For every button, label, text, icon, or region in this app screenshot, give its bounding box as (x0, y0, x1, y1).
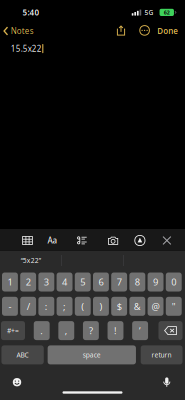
button[interactable]: return (141, 345, 182, 364)
staticText: " (172, 300, 176, 312)
button[interactable]: , (58, 321, 74, 340)
staticText: , (65, 324, 68, 337)
staticText: 5G (144, 8, 153, 17)
button[interactable]: “5x22” (0, 251, 61, 270)
button[interactable]: #+= (1, 321, 25, 340)
staticText: ; (63, 300, 66, 312)
button[interactable]: space (48, 345, 136, 364)
button[interactable]: - (2, 297, 18, 316)
staticText: 62 (164, 9, 170, 16)
staticText: Done (157, 26, 178, 36)
staticText: ? (89, 324, 93, 337)
staticText: Notes (11, 26, 34, 36)
staticText: 15.5x22 (11, 43, 42, 54)
staticText: space (83, 350, 101, 359)
button[interactable]: @ (148, 297, 163, 316)
button[interactable]: 0 (166, 272, 182, 291)
button[interactable]: . (34, 321, 50, 340)
staticText: / (27, 300, 30, 312)
button[interactable]: Markup (130, 230, 150, 251)
button[interactable]: ! (108, 321, 123, 340)
staticText: & (134, 300, 141, 312)
button[interactable]: 9 (148, 272, 163, 291)
staticText: ABC (17, 350, 29, 359)
button[interactable]: 4 (57, 272, 72, 291)
button[interactable]: Emoji (7, 372, 27, 392)
staticText: ( (81, 300, 84, 312)
staticText: - (8, 300, 11, 312)
button[interactable]: 2 (20, 272, 36, 291)
staticText: 9 (153, 276, 158, 288)
button[interactable]: Done (154, 22, 181, 40)
button[interactable]: More options (135, 21, 154, 40)
button[interactable]: Dictation (157, 371, 176, 393)
staticText: “5x22” (21, 256, 41, 265)
button[interactable]: 3 (38, 272, 54, 291)
button[interactable]: ’ (132, 321, 148, 340)
button[interactable]: / (20, 297, 36, 316)
button[interactable]: ) (93, 297, 109, 316)
staticText: $ (117, 300, 122, 312)
button[interactable]: : (38, 297, 54, 316)
button[interactable]: 5 (75, 272, 91, 291)
staticText: Aa (47, 235, 57, 246)
button[interactable]: 6 (93, 272, 109, 291)
button[interactable]: ABC (1, 345, 44, 364)
staticText: 8 (135, 276, 140, 288)
staticText: 4 (62, 276, 67, 288)
button[interactable]: 1 (2, 272, 18, 291)
staticText: 5:40 (22, 7, 39, 18)
staticText: ’ (139, 324, 141, 337)
staticText: 0 (171, 276, 176, 288)
button[interactable]: ( (75, 297, 91, 316)
button[interactable]: Hide keyboard (157, 231, 176, 250)
staticText: 2 (26, 276, 31, 288)
staticText: return (152, 350, 172, 359)
staticText: 6 (98, 276, 103, 288)
staticText: @ (151, 300, 159, 312)
button[interactable]: ; (57, 297, 72, 316)
button[interactable]: " (166, 297, 182, 316)
button[interactable]: $ (111, 297, 127, 316)
button[interactable]: 7 (111, 272, 127, 291)
button[interactable]: 8 (129, 272, 145, 291)
button[interactable]: Checklist (72, 231, 92, 250)
staticText: . (40, 324, 43, 337)
staticText: 3 (44, 276, 49, 288)
button[interactable]: Camera (103, 231, 123, 250)
staticText: 1 (7, 276, 12, 288)
button[interactable]: Notes (0, 22, 37, 40)
button[interactable]: Aa (42, 230, 62, 251)
staticText: 5 (80, 276, 85, 288)
button[interactable]: Delete (158, 321, 182, 340)
staticText: ! (114, 324, 117, 337)
button[interactable]: Share (112, 20, 130, 41)
button[interactable]: & (129, 297, 145, 316)
button[interactable]: ? (83, 321, 99, 340)
staticText: 7 (117, 276, 122, 288)
staticText: ) (99, 300, 102, 312)
staticText: : (45, 300, 48, 312)
staticText: #+= (7, 326, 19, 335)
button[interactable]: Table (17, 231, 38, 250)
